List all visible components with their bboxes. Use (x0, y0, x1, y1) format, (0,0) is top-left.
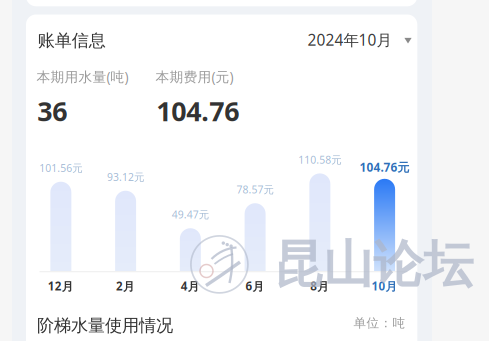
staticText: 本期费用(元) (156, 67, 234, 86)
staticText: 10月 (372, 278, 398, 294)
staticText: 101.56元 (39, 161, 82, 175)
staticText: 单位：吨 (353, 315, 405, 331)
staticText: 2024年10月 (308, 29, 392, 50)
staticText: 36 (37, 93, 67, 129)
staticText: 78.57元 (237, 182, 274, 197)
staticText: 本期用水量(吨) (37, 67, 129, 86)
staticText: 账单信息 (38, 30, 106, 51)
staticText: 2月 (116, 278, 135, 294)
staticText: 104.76元 (360, 159, 410, 175)
button[interactable]: 2024年10月 (308, 26, 412, 52)
staticText: 49.47元 (172, 207, 209, 222)
staticText: 110.58元 (298, 153, 341, 167)
staticText: 12月 (48, 278, 74, 294)
staticText: 104.76 (156, 93, 239, 129)
staticText: 6月 (246, 278, 265, 294)
staticText: 昆山论坛 (273, 233, 473, 296)
staticText: 93.12元 (107, 170, 144, 184)
staticText: 阶梯水量使用情况 (37, 315, 173, 336)
staticText: 4月 (181, 278, 200, 294)
staticText: 8月 (310, 278, 329, 294)
